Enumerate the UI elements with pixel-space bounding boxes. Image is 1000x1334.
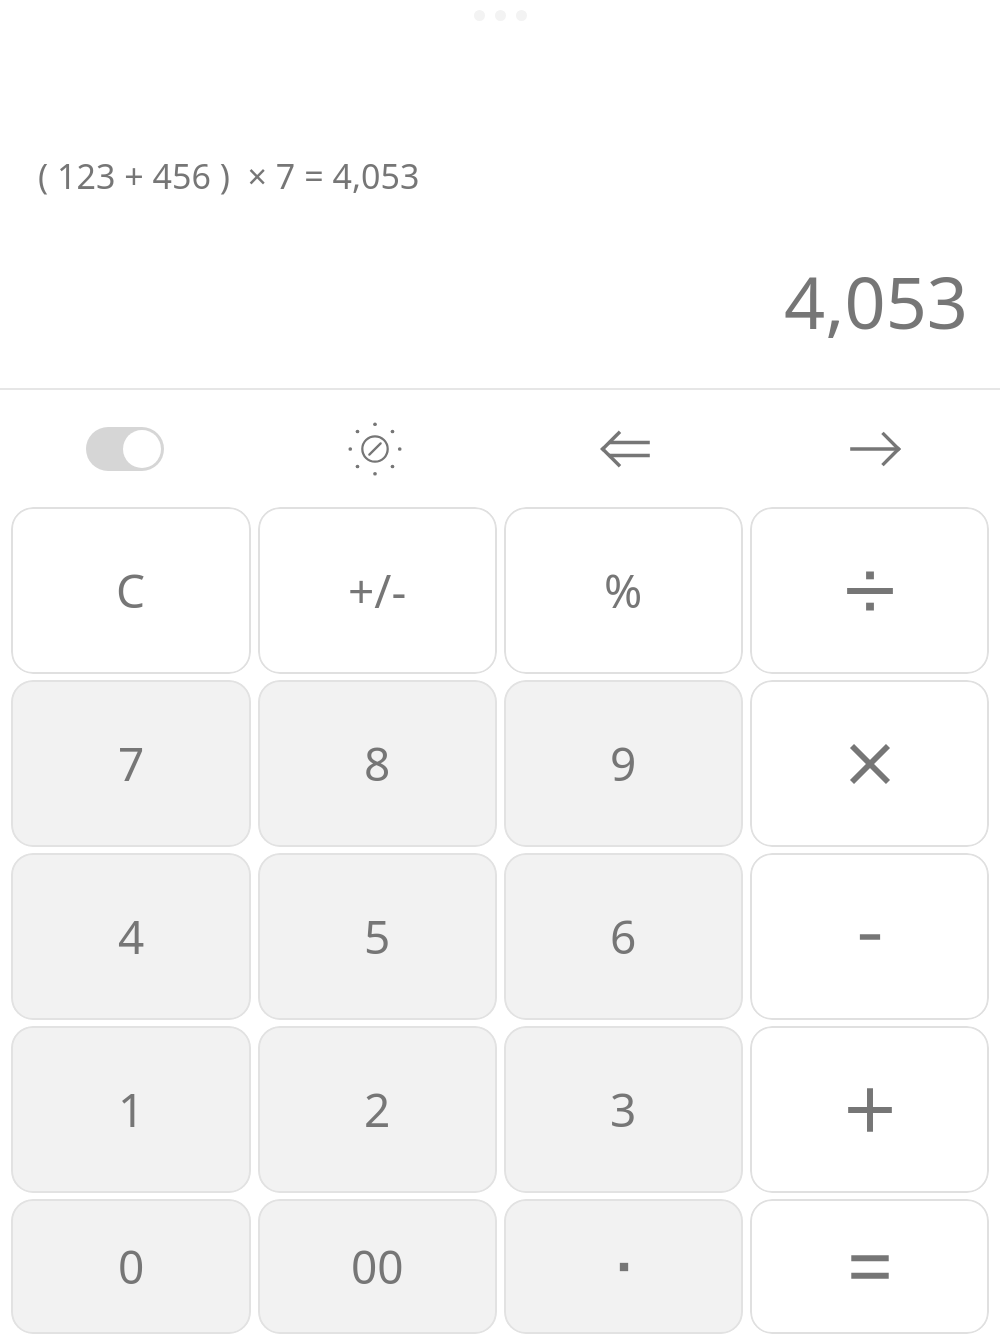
- button[interactable]: +/-: [258, 507, 497, 674]
- button[interactable]: 5: [258, 853, 497, 1020]
- staticText: 9: [610, 732, 637, 795]
- button[interactable]: C: [11, 507, 251, 674]
- staticText: 6: [610, 905, 637, 968]
- button[interactable]: Multiply: [750, 680, 989, 847]
- button[interactable]: Plus: [750, 1026, 989, 1193]
- button[interactable]: 4: [11, 853, 251, 1020]
- button[interactable]: Toggle: [0, 390, 250, 507]
- staticText: ( 123 + 456 ) × 7 = 4,053: [38, 153, 420, 199]
- button[interactable]: 3: [504, 1026, 743, 1193]
- staticText: 00: [351, 1235, 404, 1298]
- button[interactable]: Decimal point: [504, 1199, 743, 1334]
- staticText: 7: [118, 732, 145, 795]
- button[interactable]: 1: [11, 1026, 251, 1193]
- staticText: 5: [364, 905, 391, 968]
- button[interactable]: 9: [504, 680, 743, 847]
- button[interactable]: 6: [504, 853, 743, 1020]
- button[interactable]: 0: [11, 1199, 251, 1334]
- staticText: %: [604, 559, 643, 622]
- staticText: +/-: [348, 559, 407, 622]
- button[interactable]: Minus: [750, 853, 989, 1020]
- staticText: 0: [118, 1235, 145, 1298]
- button[interactable]: 8: [258, 680, 497, 847]
- staticText: 4: [118, 905, 145, 968]
- staticText: 3: [610, 1078, 637, 1141]
- staticText: 4,053: [783, 252, 968, 350]
- button[interactable]: Forward: [750, 390, 1000, 507]
- staticText: 2: [364, 1078, 391, 1141]
- staticText: 8: [364, 732, 391, 795]
- staticText: 1: [118, 1078, 145, 1141]
- button[interactable]: 7: [11, 680, 251, 847]
- button[interactable]: Equals: [750, 1199, 989, 1334]
- button[interactable]: Brightness: [250, 390, 500, 507]
- button[interactable]: 00: [258, 1199, 497, 1334]
- button[interactable]: Divide: [750, 507, 989, 674]
- button[interactable]: 2: [258, 1026, 497, 1193]
- button[interactable]: %: [504, 507, 743, 674]
- button[interactable]: Backspace: [500, 390, 750, 507]
- staticText: C: [116, 559, 146, 622]
